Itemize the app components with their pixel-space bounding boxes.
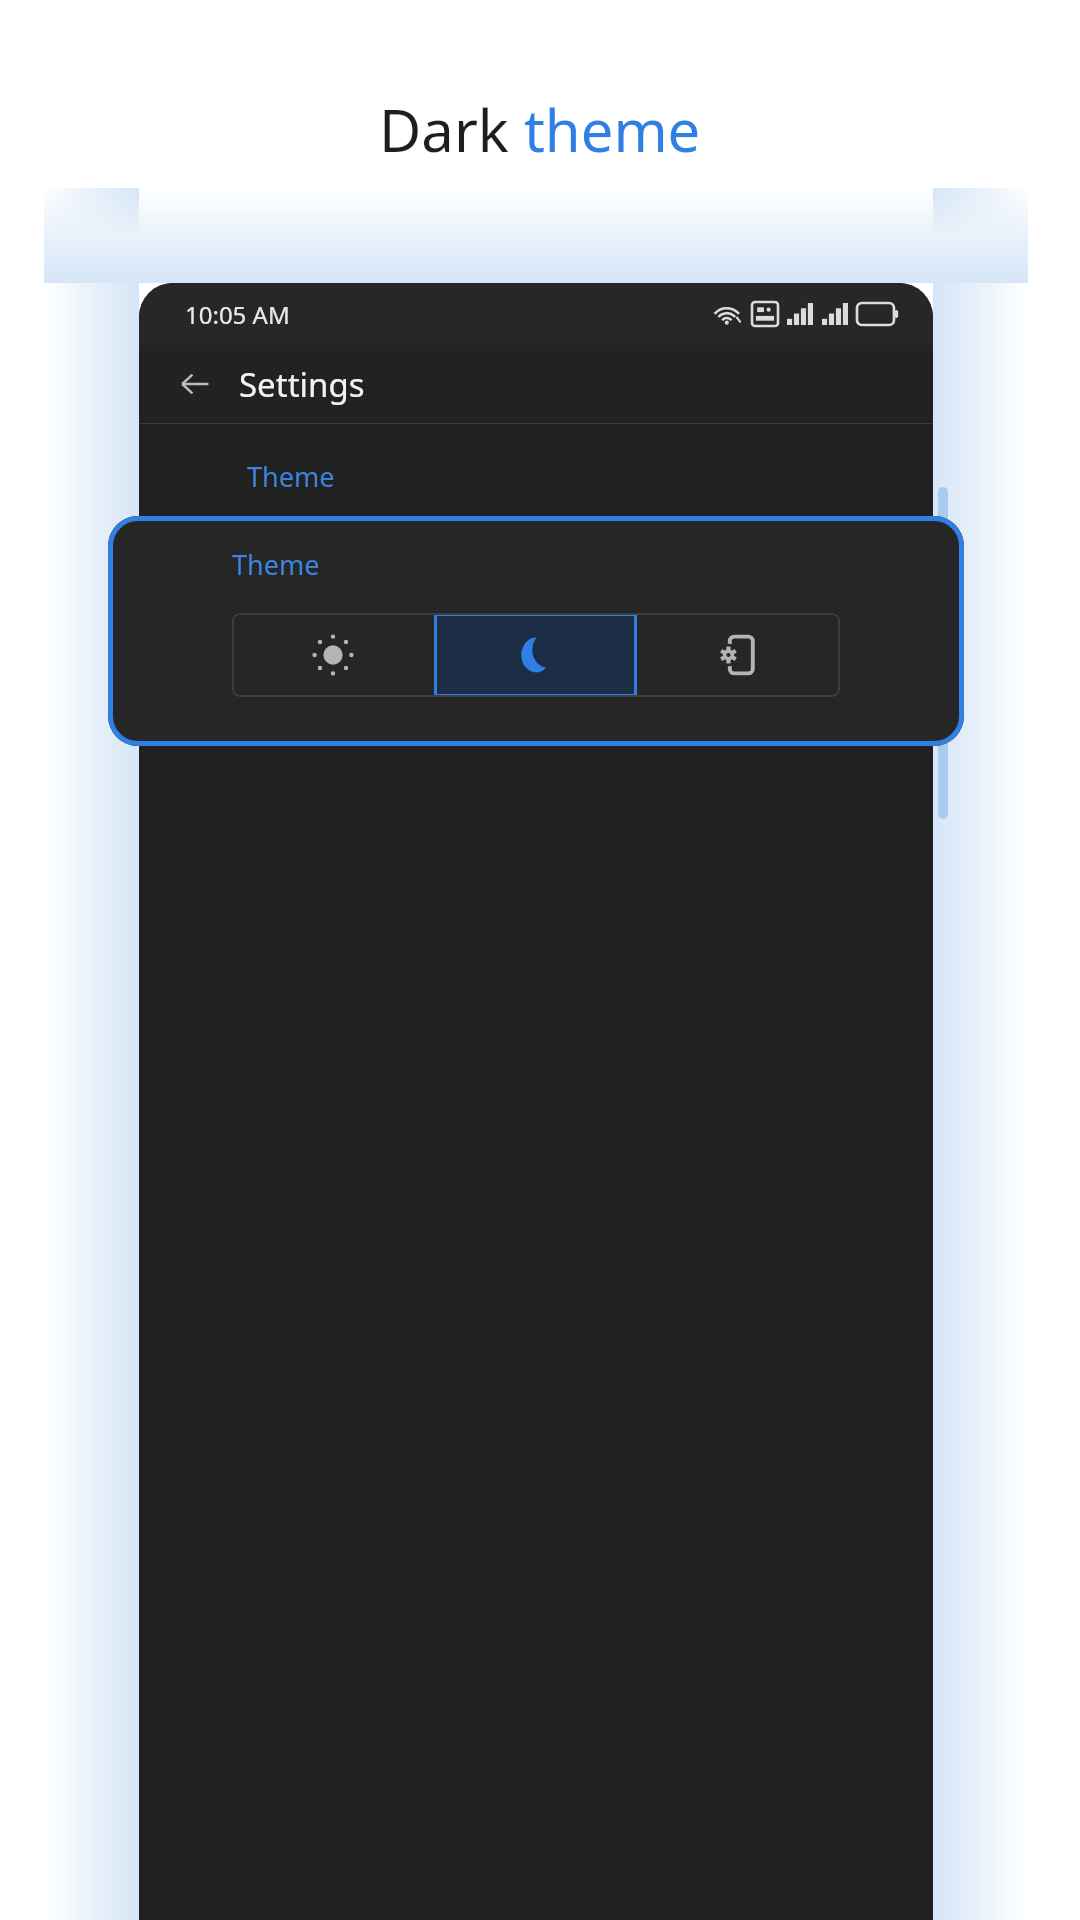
button[interactable]: Dark theme bbox=[434, 613, 637, 697]
staticText: 10:05 AM bbox=[185, 298, 290, 331]
button[interactable]: System theme bbox=[637, 613, 840, 697]
staticText: Dark theme bbox=[379, 90, 701, 169]
button[interactable]: Theme bbox=[108, 516, 964, 746]
staticText: Theme bbox=[232, 546, 320, 583]
button[interactable]: Light theme bbox=[232, 613, 434, 697]
button[interactable]: Back bbox=[167, 356, 223, 412]
staticText: Settings bbox=[239, 362, 365, 407]
staticText: Theme bbox=[247, 458, 335, 495]
